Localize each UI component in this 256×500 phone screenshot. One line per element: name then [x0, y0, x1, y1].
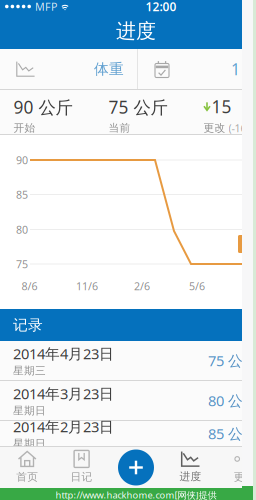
staticText: 更改: [203, 121, 228, 135]
staticText: 日记: [71, 470, 93, 483]
staticText: 75: [16, 257, 28, 271]
staticText: MFP: [35, 0, 57, 14]
staticText: 75 公斤: [108, 95, 167, 118]
staticText: 75 公斤: [208, 351, 256, 370]
button[interactable]: Add entry: [109, 448, 163, 486]
button[interactable]: 1: [138, 49, 256, 89]
staticText: http://www.hackhome.com[网侠]提供: [55, 489, 216, 500]
staticText: 15: [211, 95, 231, 118]
staticText: 当前: [108, 121, 130, 135]
staticText: 更多: [234, 470, 256, 483]
staticText: 记录: [13, 316, 43, 334]
button[interactable]: 2014年3月23日: [0, 381, 256, 421]
staticText: 90: [16, 153, 28, 167]
staticText: 进度: [116, 19, 156, 43]
staticText: 星期三: [13, 364, 46, 377]
button[interactable]: 首页: [0, 447, 54, 488]
staticText: 85 公斤: [208, 424, 256, 443]
staticText: 8/6: [21, 279, 37, 293]
staticText: 进度: [179, 470, 201, 483]
staticText: 5/6: [189, 279, 205, 293]
button[interactable]: 更多: [218, 447, 256, 488]
button[interactable]: 体重: [0, 49, 137, 89]
button[interactable]: 进度: [163, 447, 218, 488]
staticText: 1: [231, 58, 240, 80]
staticText: 12:00: [145, 0, 176, 14]
staticText: 星期日: [13, 404, 46, 417]
button[interactable]: 2014年4月23日: [0, 341, 256, 381]
staticText: 80: [16, 222, 28, 237]
staticText: 2014年3月23日: [13, 384, 114, 403]
staticText: 85: [16, 187, 28, 202]
button[interactable]: 2014年2月23日: [0, 421, 256, 447]
button[interactable]: 日记: [54, 447, 109, 488]
staticText: (-16.7%): [228, 121, 256, 135]
staticText: 体重: [94, 60, 124, 78]
staticText: 11/6: [76, 279, 98, 293]
staticText: 2014年2月23日: [13, 417, 114, 436]
button[interactable]: 记录: [0, 309, 256, 341]
staticText: 80 公斤: [208, 391, 256, 410]
staticText: 2/6: [134, 279, 150, 293]
staticText: 星期日: [13, 437, 46, 450]
staticText: 90 公斤: [13, 95, 72, 118]
staticText: 首页: [16, 470, 38, 483]
staticText: 2014年4月23日: [13, 344, 114, 363]
staticText: 开始: [13, 121, 35, 135]
